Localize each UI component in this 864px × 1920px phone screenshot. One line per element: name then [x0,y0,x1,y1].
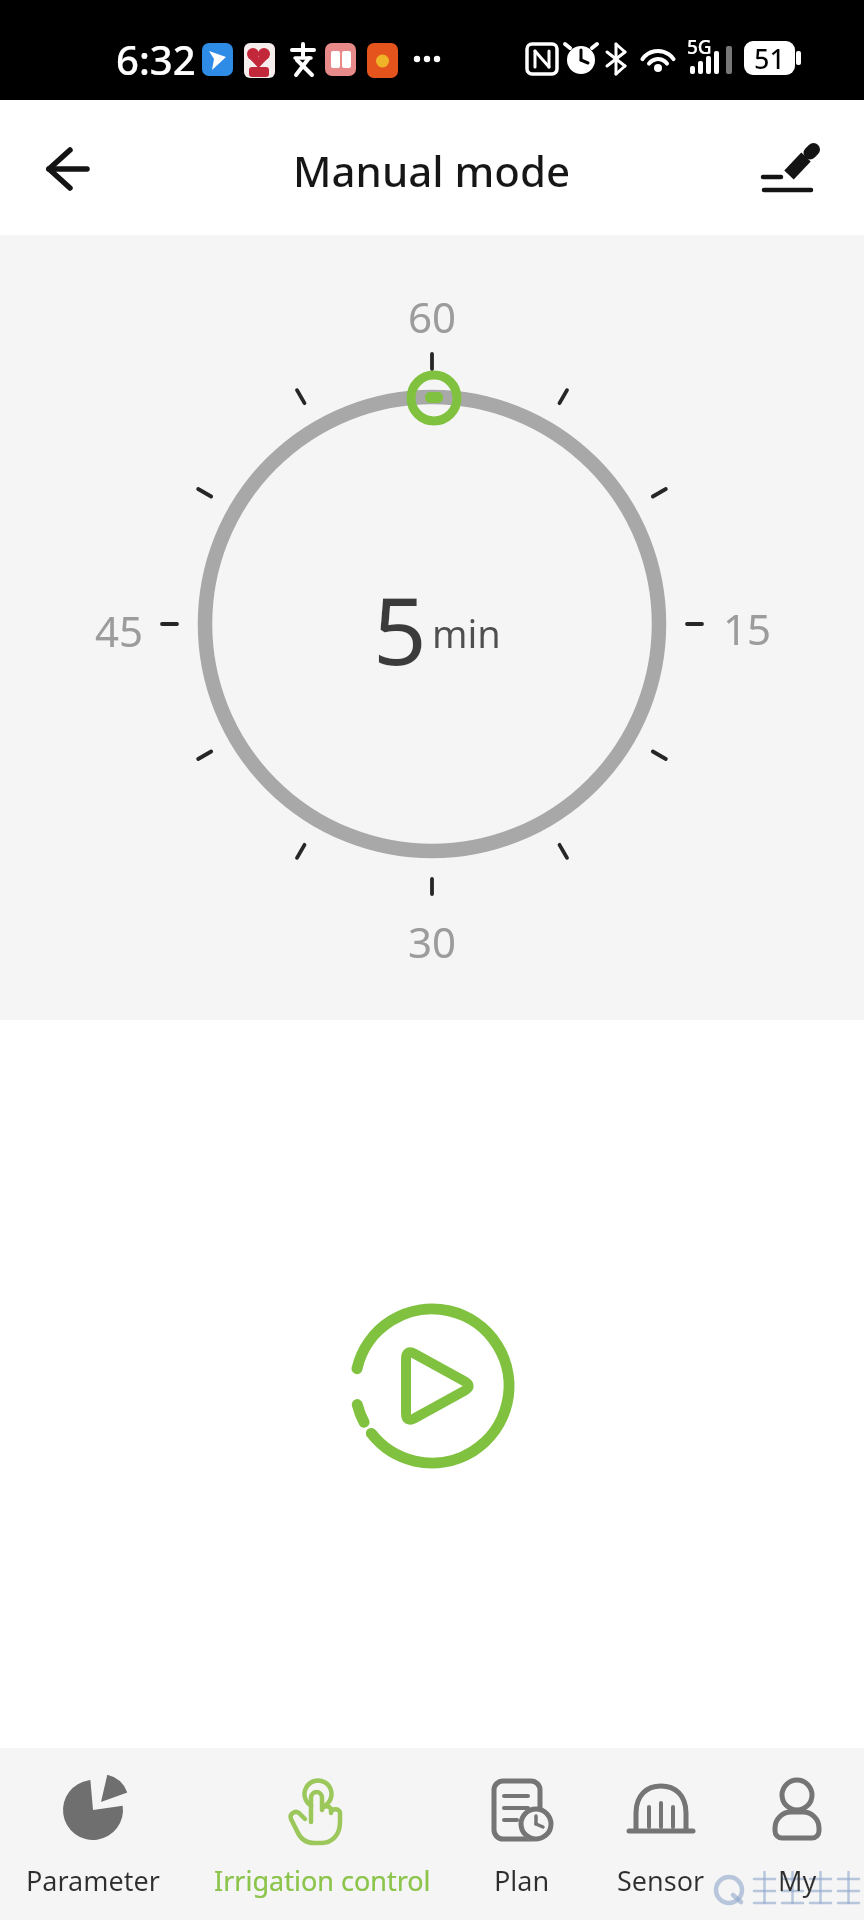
staticText: My [778,1862,817,1899]
staticText: 51 [754,40,785,77]
button[interactable] [748,130,828,210]
staticText: 5 [373,565,427,693]
staticText: Parameter [26,1862,160,1899]
staticText: Irrigation control [214,1862,431,1899]
staticText: Sensor [617,1862,705,1899]
button[interactable] [404,368,464,428]
button[interactable] [742,1755,854,1915]
button[interactable] [10,1755,176,1915]
button[interactable] [30,133,100,203]
staticText: 45 [95,602,144,659]
button[interactable] [594,1755,728,1915]
staticText: min [432,607,501,659]
button[interactable] [345,1299,519,1473]
staticText: 60 [408,288,457,345]
staticText: Plan [494,1862,550,1899]
staticText: 5G [687,34,712,60]
staticText: 30 [408,913,457,970]
staticText: Manual mode [293,142,571,199]
staticText: 6:32 [116,32,196,86]
button[interactable] [462,1755,582,1915]
staticText: 15 [723,600,772,657]
button[interactable] [196,1755,448,1915]
